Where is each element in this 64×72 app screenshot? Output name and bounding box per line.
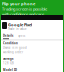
staticText: Flip your phone (2, 1, 35, 6)
staticText: Condition (3, 41, 18, 45)
staticText: Specs (18, 34, 25, 37)
staticText: Device is in good (3, 46, 27, 49)
staticText: Google Pixel (8, 22, 32, 27)
staticText: working order (3, 50, 23, 54)
staticText: Storage (3, 57, 14, 60)
staticText: Trading screen is possible (2, 6, 47, 12)
staticText: 128 GB (3, 62, 14, 65)
staticText: Trade in value (8, 27, 27, 31)
staticText: Model ID (3, 68, 17, 72)
staticText: with confidence and care (2, 12, 44, 17)
staticText: Details (3, 34, 13, 37)
